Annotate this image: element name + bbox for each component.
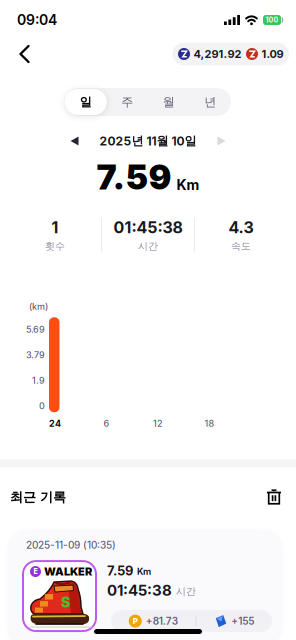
staticText: 시간 (176, 585, 196, 598)
staticText: 주 (121, 95, 133, 109)
staticText: 24 (49, 418, 61, 429)
button[interactable]: Previous day (70, 131, 78, 150)
staticText: 7.59 (107, 563, 133, 578)
staticText: +155 (231, 615, 254, 627)
staticText: 100 (265, 16, 278, 24)
staticText: 09:04 (17, 12, 57, 28)
staticText: 2025-11-09 (10:35) (26, 539, 116, 551)
button[interactable]: 년 (189, 88, 231, 116)
staticText: 4.3 (228, 218, 253, 237)
staticText: Km (137, 566, 151, 577)
button[interactable]: Points balance (172, 42, 289, 65)
staticText: 일 (80, 95, 92, 109)
staticText: 6 (103, 418, 109, 429)
staticText: 횟수 (45, 240, 65, 252)
staticText: (km) (29, 301, 48, 312)
staticText: 년 (204, 95, 216, 109)
staticText: E (33, 567, 37, 576)
staticText: 5.69 (26, 324, 45, 335)
staticText: WALKER (44, 565, 92, 578)
staticText: +81.73 (146, 615, 178, 627)
staticText: 12 (153, 418, 163, 429)
staticText: 속도 (231, 240, 251, 252)
button[interactable]: Delete records (267, 489, 296, 505)
staticText: 2025년 11월 10일 (99, 134, 196, 148)
staticText: 최근 기록 (10, 489, 66, 505)
staticText: P (133, 616, 138, 626)
button[interactable]: 일 (65, 88, 106, 116)
staticText: 01:45:38 (107, 581, 172, 599)
staticText: 0 (39, 401, 45, 411)
button[interactable]: 2025-11-09 (10:35) (10, 531, 280, 640)
button[interactable]: Next day (217, 131, 225, 150)
staticText: 1.9 (32, 375, 45, 386)
button[interactable]: Back (0, 36, 30, 72)
staticText: 1.09 (261, 47, 283, 60)
staticText: 월 (163, 95, 175, 109)
staticText: 1 (51, 218, 58, 237)
staticText: 4,291.92 (193, 47, 241, 60)
staticText: 3.79 (26, 350, 45, 360)
button[interactable]: 월 (148, 88, 189, 116)
staticText: 시간 (138, 240, 158, 252)
staticText: 7.59 (96, 157, 171, 197)
staticText: 01:45:38 (113, 218, 182, 237)
staticText: S (61, 594, 70, 611)
staticText: Km (176, 177, 199, 193)
button[interactable]: 주 (106, 88, 148, 116)
staticText: 18 (204, 418, 214, 429)
